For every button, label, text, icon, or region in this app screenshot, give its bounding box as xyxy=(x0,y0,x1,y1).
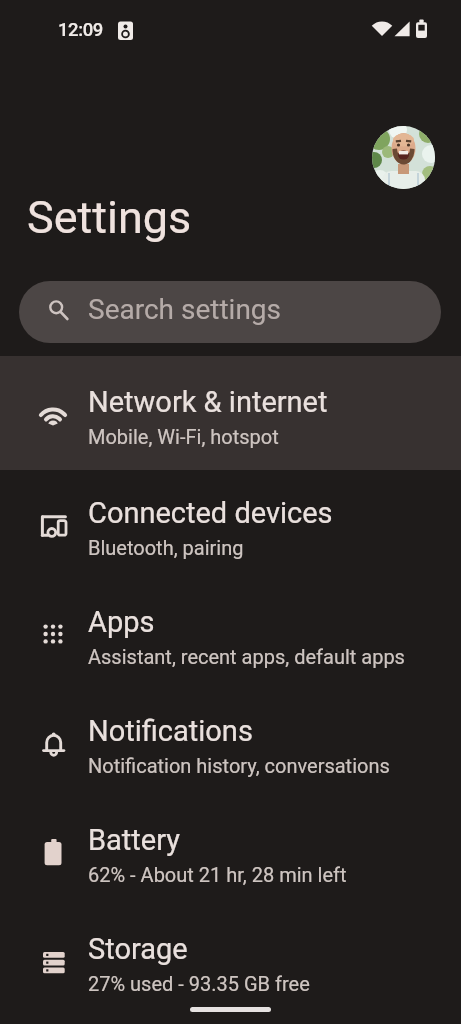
staticText: Notifications xyxy=(88,714,253,748)
staticText: 12:09 xyxy=(58,19,103,41)
button[interactable]: Notifications xyxy=(0,688,461,797)
staticText: Connected devices xyxy=(88,496,333,530)
staticText: Assistant, recent apps, default apps xyxy=(88,645,405,668)
staticText: Storage xyxy=(88,932,188,966)
staticText: Settings xyxy=(27,191,192,244)
staticText: Mobile, Wi-Fi, hotspot xyxy=(88,425,279,448)
button[interactable]: Search settings xyxy=(19,281,441,343)
staticText: Notification history, conversations xyxy=(88,754,390,777)
button[interactable]: Network & internet xyxy=(0,356,461,470)
staticText: Search settings xyxy=(88,293,282,326)
button[interactable]: Apps xyxy=(0,579,461,688)
staticText: Apps xyxy=(88,605,155,639)
staticText: Battery xyxy=(88,823,180,857)
button[interactable]: Connected devices xyxy=(0,470,461,579)
button[interactable]: Battery xyxy=(0,797,461,906)
staticText: Network & internet xyxy=(88,385,328,419)
staticText: Bluetooth, pairing xyxy=(88,536,244,559)
button[interactable]: Storage xyxy=(0,906,461,1015)
staticText: 62% - About 21 hr, 28 min left xyxy=(88,863,347,886)
button[interactable] xyxy=(372,126,435,189)
staticText: 27% used - 93.35 GB free xyxy=(88,972,310,995)
